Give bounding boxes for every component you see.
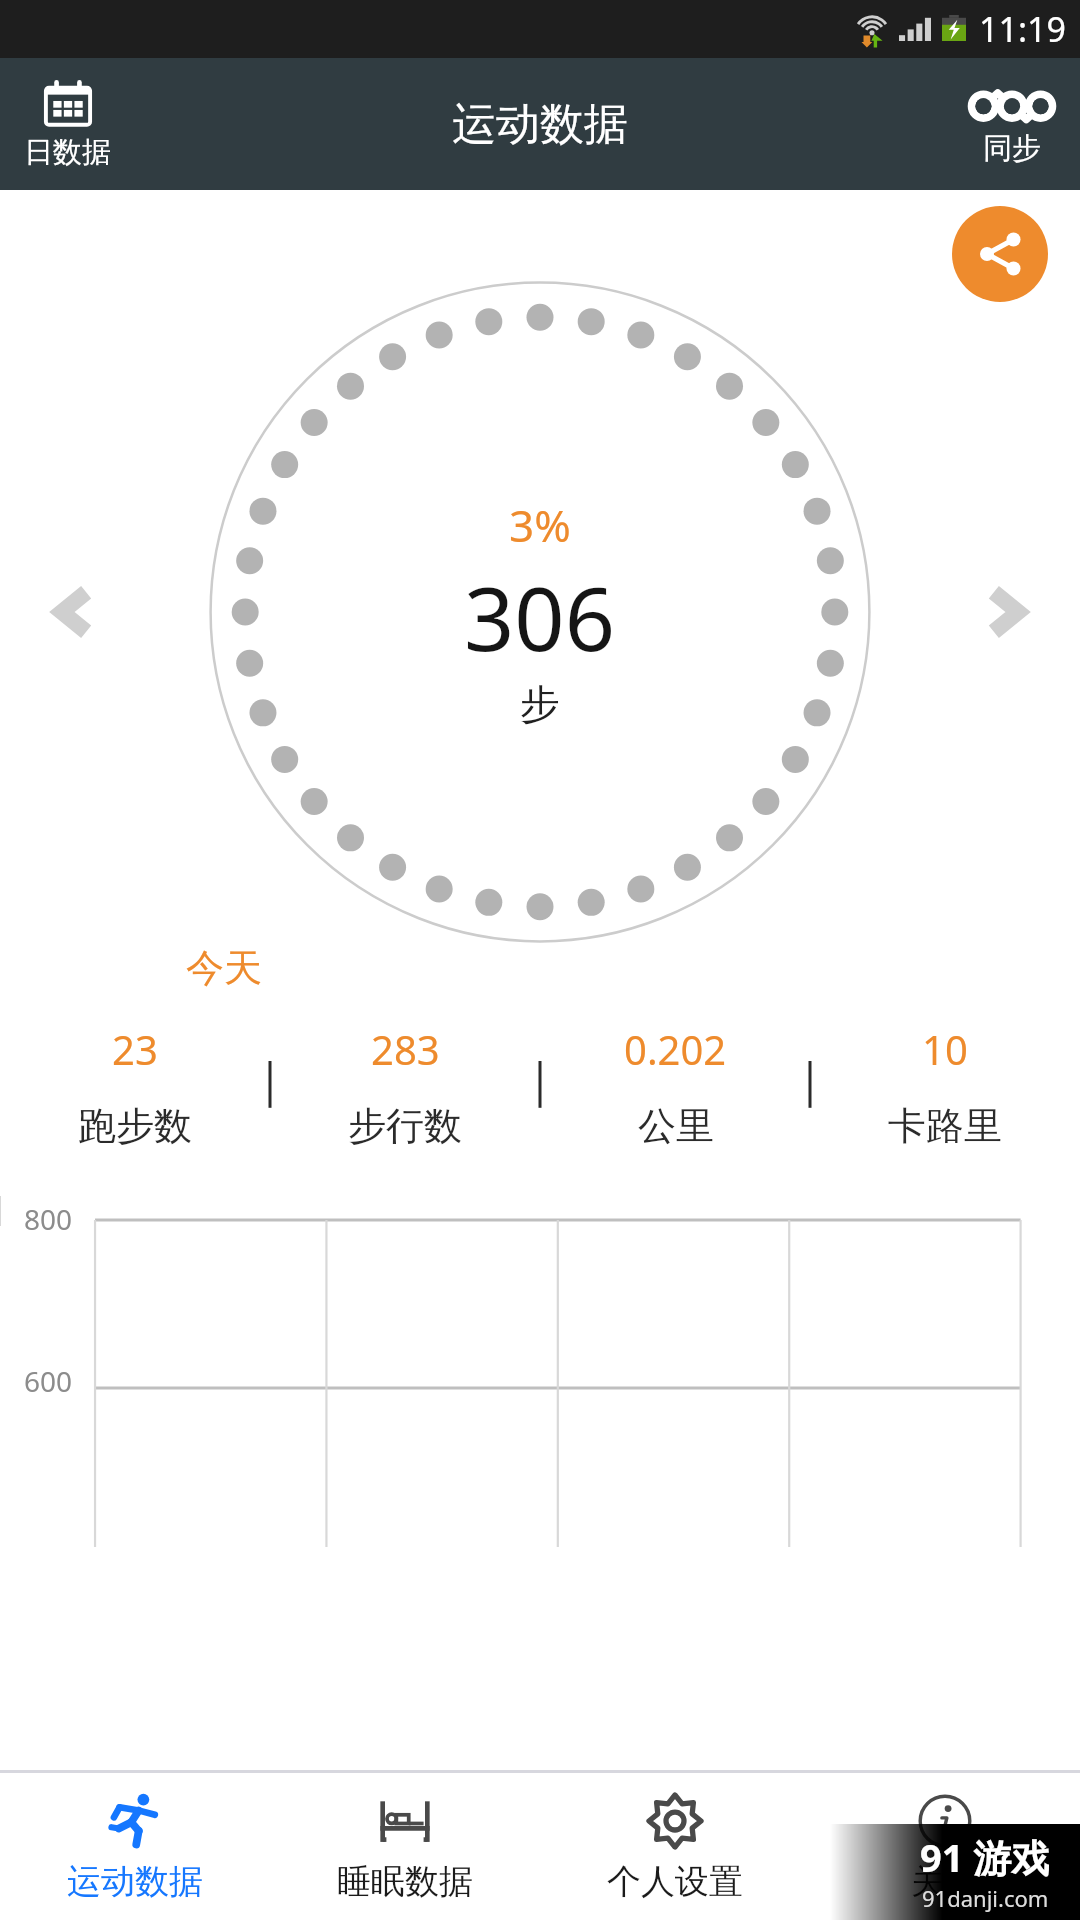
staticText: 今天 [186,944,262,992]
staticText: 公里 [638,1102,714,1150]
button[interactable]: 运动数据 [0,1773,270,1920]
staticText: 睡眠数据 [337,1860,473,1903]
button[interactable]: 10 [810,1022,1080,1152]
staticText: 800 [24,1200,73,1238]
staticText: 3% [509,495,571,555]
staticText: 283 [371,1022,440,1076]
staticText: 同步 [983,130,1041,167]
button[interactable]: 0.202 [540,1022,810,1152]
button[interactable]: 23 [0,1022,270,1152]
staticText: 10 [922,1022,968,1076]
button[interactable]: 睡眠数据 [270,1773,540,1920]
button[interactable]: 同步 [960,76,1064,173]
staticText: 0.202 [624,1022,727,1076]
button[interactable]: 日数据 [14,72,121,177]
staticText: 91 游戏 [920,1831,1050,1883]
staticText: 跑步数 [78,1102,192,1150]
staticText: 日数据 [24,134,111,171]
staticText: 91danji.com [922,1883,1049,1913]
staticText: 步行数 [348,1102,462,1150]
button[interactable]: 个人设置 [540,1773,810,1920]
staticText: 卡路里 [888,1102,1002,1150]
button[interactable]: Previous day [36,574,112,650]
staticText: 关于 [911,1860,979,1903]
button[interactable]: 283 [270,1022,540,1152]
button[interactable]: Share [952,206,1048,302]
button[interactable]: Next day [968,574,1044,650]
staticText: 运动数据 [452,97,628,152]
staticText: 23 [112,1022,158,1076]
staticText: 个人设置 [607,1860,743,1903]
staticText: 运动数据 [67,1860,203,1903]
staticText: 步 [520,679,560,729]
staticText: 600 [24,1362,73,1400]
staticText: 306 [464,557,616,677]
staticText: 11:19 [979,6,1066,52]
button[interactable]: 关于 [810,1773,1080,1920]
